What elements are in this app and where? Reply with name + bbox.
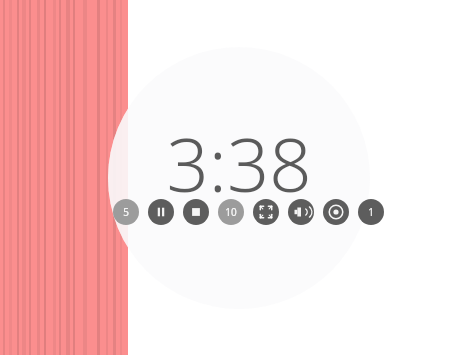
button[interactable]: 1 minute [358, 199, 384, 225]
button[interactable]: Stop [183, 199, 209, 225]
button[interactable]: Pause [148, 199, 174, 225]
button[interactable]: Fullscreen [253, 199, 279, 225]
button[interactable]: Volume [288, 199, 314, 225]
staticText: 10 [225, 205, 237, 219]
staticText: 1 [368, 205, 374, 219]
staticText: 3:38 [159, 113, 319, 193]
button[interactable]: 5 minutes [113, 199, 139, 225]
staticText: 5 [123, 205, 129, 219]
button[interactable]: 10 minutes [218, 199, 244, 225]
button[interactable]: Record [323, 199, 349, 225]
